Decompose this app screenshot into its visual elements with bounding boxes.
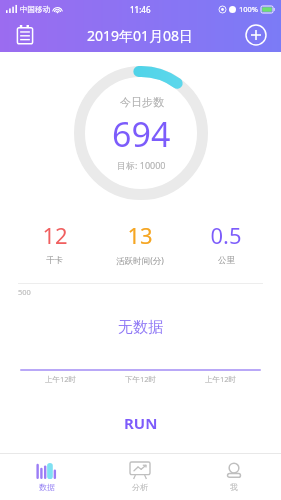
staticText: 12 (42, 220, 68, 250)
staticText: 无数据 (118, 318, 163, 337)
staticText: 目标: 10000 (117, 159, 166, 171)
button[interactable]: Records (10, 20, 40, 50)
button[interactable]: Add (241, 20, 271, 50)
staticText: 数据 (39, 482, 55, 492)
staticText: 2019年01月08日 (87, 26, 194, 45)
button[interactable]: 分析 (93, 454, 187, 500)
staticText: 下午12时 (125, 374, 157, 384)
staticText: 0.5 (210, 220, 242, 250)
staticText: 我 (230, 482, 238, 492)
staticText: 13 (127, 220, 153, 250)
staticText: 公里 (218, 255, 235, 266)
staticText: 100% (239, 4, 259, 14)
button[interactable]: 12 (12, 220, 97, 266)
button[interactable]: 13 (97, 220, 183, 267)
button[interactable]: 我 (187, 454, 281, 500)
staticText: 分析 (132, 482, 148, 492)
staticText: 中国移动 (20, 5, 50, 14)
button[interactable]: 0.5 (183, 220, 269, 266)
button[interactable]: 数据 (0, 454, 93, 500)
staticText: 今日步数 (120, 95, 164, 109)
staticText: RUN (124, 413, 158, 433)
staticText: 11:46 (130, 4, 151, 15)
staticText: 上午12时 (205, 374, 237, 384)
staticText: 500 (18, 287, 31, 297)
staticText: 活跃时间(分) (116, 255, 164, 267)
staticText: 上午12时 (45, 374, 77, 384)
button[interactable]: RUN (110, 409, 172, 437)
staticText: 千卡 (46, 255, 63, 266)
staticText: 694 (112, 111, 171, 157)
